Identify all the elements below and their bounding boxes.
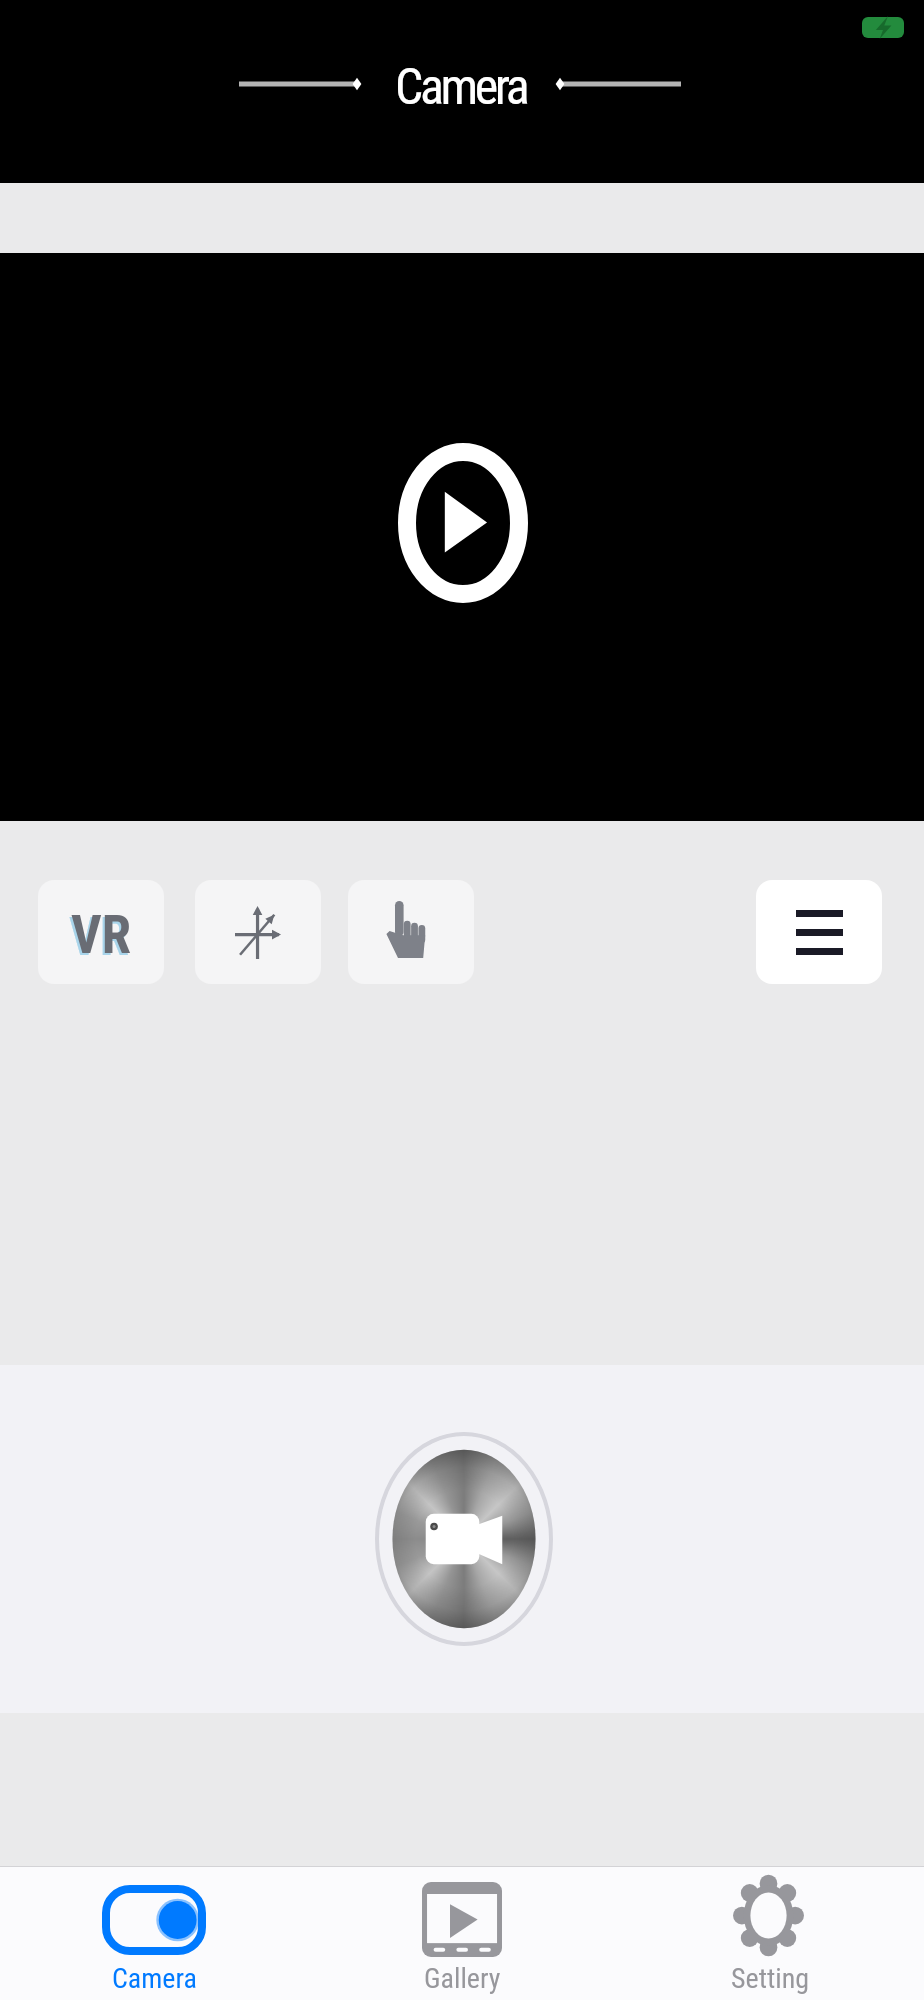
button[interactable]: Touch control xyxy=(348,880,474,984)
staticText: Gallery xyxy=(424,1962,501,1995)
staticText: VR xyxy=(71,904,131,966)
button[interactable]: Record xyxy=(375,1432,553,1646)
staticText: Setting xyxy=(731,1962,810,1995)
other: Battery charging xyxy=(862,17,904,38)
button[interactable]: Play xyxy=(398,443,528,603)
staticText: Camera xyxy=(112,1962,197,1995)
button[interactable]: Camera xyxy=(0,1867,308,2000)
button[interactable]: Setting xyxy=(616,1867,924,2000)
button[interactable]: Menu xyxy=(756,880,882,984)
staticText: VR xyxy=(69,906,129,968)
staticText: Camera xyxy=(395,58,527,117)
button[interactable]: VR mode xyxy=(38,880,164,984)
button[interactable]: Axis xyxy=(195,880,321,984)
button[interactable]: Gallery xyxy=(308,1867,616,2000)
